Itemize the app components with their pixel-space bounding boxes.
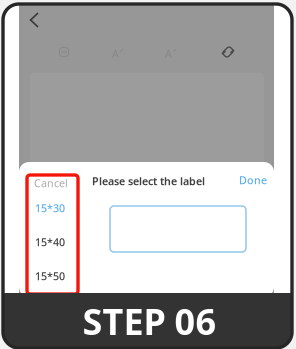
staticText: Please select the label xyxy=(92,174,205,188)
staticText: 15*30 xyxy=(35,201,65,215)
button[interactable]: 15*30 xyxy=(35,199,75,217)
staticText: STEP 06 xyxy=(82,297,216,345)
staticText: 15*50 xyxy=(35,269,65,283)
button[interactable]: Label xyxy=(215,41,241,63)
staticText: 15*40 xyxy=(35,235,65,249)
button[interactable]: Brightness xyxy=(51,41,77,63)
button[interactable]: Back xyxy=(22,7,46,33)
staticText: Cancel xyxy=(34,176,68,190)
button[interactable]: Done xyxy=(239,174,269,186)
staticText: Done xyxy=(239,173,267,187)
button[interactable]: 15*50 xyxy=(35,267,75,285)
button[interactable]: 15*40 xyxy=(35,233,75,251)
